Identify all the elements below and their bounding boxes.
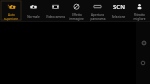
button[interactable]: Auto superiore: [0, 0, 22, 21]
button[interactable]: Galleria: [139, 59, 147, 67]
staticText: Normale: [27, 15, 40, 19]
staticText: Effetto: [72, 13, 82, 17]
staticText: Ritratto: [134, 13, 145, 17]
button[interactable]: Effetto immagine: [66, 0, 87, 21]
button[interactable]: Selezione scena: [108, 0, 129, 21]
staticText: panorama: [90, 17, 106, 21]
button[interactable]: Normale: [22, 0, 44, 21]
staticText: superiore: [4, 17, 18, 21]
staticText: Videocamera: [46, 15, 65, 19]
staticText: Auto: [8, 13, 15, 17]
staticText: Apertura: [91, 13, 104, 17]
button[interactable]: Videocamera: [44, 0, 66, 21]
staticText: Selezione scena: [108, 15, 129, 19]
staticText: migliore: [133, 17, 146, 21]
staticText: SCN: [113, 3, 125, 11]
staticText: immagine: [69, 17, 84, 21]
button[interactable]: Apertura panorama: [87, 0, 108, 21]
button[interactable]: Scatta foto: [140, 39, 148, 47]
button[interactable]: Ritratto migliore: [129, 0, 150, 21]
